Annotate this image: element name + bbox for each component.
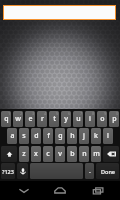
staticText: y [64,114,68,124]
button[interactable]: s [19,128,29,144]
staticText: f [47,131,50,141]
staticText: g [58,131,63,141]
staticText: a [10,131,15,141]
staticText: p [112,114,117,124]
button[interactable] [1,146,17,162]
button[interactable]: o [97,111,107,127]
button[interactable]: g [55,128,65,144]
staticText: 3 [32,111,35,116]
staticText: 2 [20,111,23,116]
button[interactable]: f [43,128,53,144]
staticText: . [89,166,91,176]
button[interactable]: Hide keyboard [8,181,40,200]
button[interactable]: x [31,146,41,162]
button[interactable]: i [85,111,95,127]
staticText: w [15,114,21,124]
button[interactable]: c [43,146,53,162]
staticText: r [41,114,44,124]
button[interactable]: z [19,146,29,162]
button[interactable]: Done [96,163,119,179]
button[interactable]: m [91,146,101,162]
button[interactable]: u [73,111,83,127]
button[interactable]: l [103,128,113,144]
staticText: n [82,149,87,159]
staticText: Done [101,168,115,175]
staticText: t [53,114,56,124]
button[interactable]: Home [44,181,76,200]
staticText: 5 [56,111,59,116]
button[interactable]: y [61,111,71,127]
staticText: 0 [116,111,119,116]
button[interactable] [17,163,28,179]
button[interactable]: d [31,128,41,144]
button[interactable] [30,163,83,179]
staticText: x [34,149,38,159]
staticText: d [34,131,39,141]
staticText: ?123 [2,168,14,175]
staticText: v [58,149,62,159]
button[interactable]: . [85,163,94,179]
button[interactable] [103,146,119,162]
staticText: q [4,114,9,124]
button[interactable]: ?123 [1,163,15,179]
staticText: l [107,131,109,141]
button[interactable]: p [109,111,119,127]
staticText: c [46,149,50,159]
staticText: u [76,114,81,124]
button[interactable]: b [67,146,77,162]
button[interactable]: q [1,111,11,127]
staticText: 7 [80,111,83,116]
staticText: 4 [44,111,47,116]
button[interactable]: e [25,111,35,127]
staticText: h [70,131,75,141]
staticText: s [22,131,26,141]
staticText: 6 [68,111,71,116]
staticText: m [93,149,100,159]
staticText: k [94,131,98,141]
button[interactable]: a [7,128,17,144]
staticText: e [28,114,33,124]
button[interactable]: w [13,111,23,127]
staticText: j [83,131,85,141]
staticText: b [70,149,75,159]
button[interactable]: h [67,128,77,144]
button[interactable]: j [79,128,89,144]
button[interactable]: t [49,111,59,127]
staticText: 9 [104,111,107,116]
staticText: o [100,114,105,124]
staticText: 1 [8,111,11,116]
button[interactable]: k [91,128,101,144]
button[interactable]: Recent apps [82,181,114,200]
staticText: i [89,114,91,124]
button[interactable]: n [79,146,89,162]
staticText: z [22,149,26,159]
button[interactable]: v [55,146,65,162]
staticText: 8 [92,111,95,116]
button[interactable]: r [37,111,47,127]
